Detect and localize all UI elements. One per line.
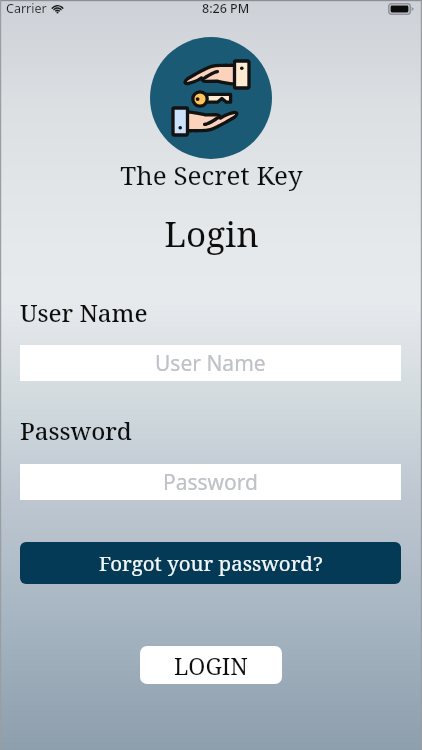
staticText: Login [164, 210, 259, 258]
staticText: User Name [20, 296, 148, 329]
staticText: LOGIN [174, 650, 248, 681]
staticText: Carrier [6, 0, 47, 17]
staticText: Forgot your password? [99, 549, 323, 577]
staticText: User Name [155, 349, 266, 378]
button[interactable]: Password [20, 464, 401, 500]
other: App logo [150, 37, 272, 159]
button[interactable]: User Name [20, 345, 401, 381]
button[interactable]: Forgot your password? [20, 542, 401, 584]
button[interactable]: LOGIN [140, 646, 282, 684]
staticText: 8:26 PM [202, 0, 250, 17]
staticText: The Secret Key [120, 157, 303, 192]
staticText: Password [163, 468, 258, 497]
staticText: Password [20, 414, 132, 447]
